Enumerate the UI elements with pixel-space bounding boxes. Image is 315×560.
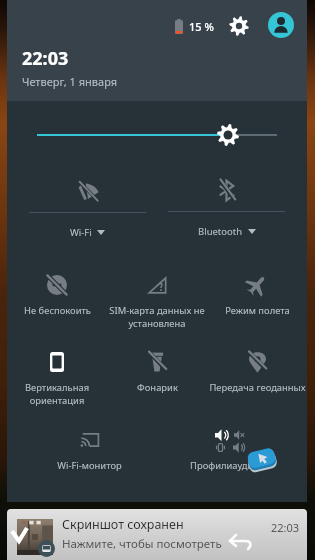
button[interactable]: Скриншот сохранен — [7, 509, 307, 560]
staticText: Вертикальная ориентация — [8, 381, 106, 407]
button[interactable]: Вертикальная ориентация — [7, 333, 107, 411]
button[interactable]: Не беспокоить — [7, 256, 107, 333]
staticText: 22:03 — [271, 520, 300, 535]
staticText: Wi-Fi — [70, 226, 92, 239]
staticText: 22:03 — [22, 46, 69, 71]
staticText: Режим полета — [225, 304, 290, 317]
staticText: Передача геоданных — [209, 381, 306, 394]
button[interactable]: Settings — [225, 12, 253, 40]
staticText: Профилиаудио — [190, 459, 259, 472]
staticText: 15 % — [189, 19, 214, 34]
button[interactable]: Передача геоданных — [207, 333, 307, 411]
button[interactable]: Профилиаудио — [157, 411, 292, 489]
staticText: Фонарик — [137, 381, 178, 394]
button[interactable]: SIM-карта данных не установлена — [107, 256, 207, 333]
staticText: Нажмите, чтобы посмотреть — [62, 536, 222, 552]
staticText: Не беспокоить — [24, 304, 91, 317]
button[interactable]: Wi-Fi — [18, 171, 157, 243]
staticText: Bluetooth — [198, 225, 243, 238]
button[interactable]: Bluetooth — [157, 171, 296, 243]
button[interactable]: Wi-Fi-монитор — [22, 411, 157, 489]
button[interactable]: Battery 15 percent — [175, 11, 214, 41]
button[interactable]: Режим полета — [207, 256, 307, 333]
staticText: SIM-карта данных не установлена — [108, 304, 206, 330]
staticText: Wi-Fi-монитор — [57, 459, 122, 472]
staticText: Четверг, 1 января — [22, 74, 118, 89]
staticText: Скриншот сохранен — [62, 516, 184, 533]
button[interactable]: User profile — [265, 9, 297, 41]
button[interactable]: Фонарик — [107, 333, 207, 411]
